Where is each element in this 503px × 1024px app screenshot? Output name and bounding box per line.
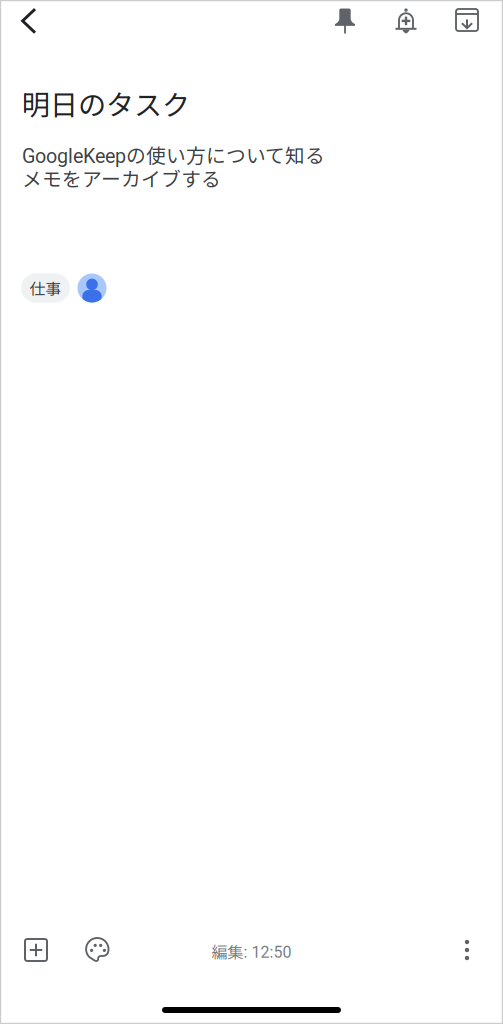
button[interactable]: 仕事 — [21, 273, 70, 302]
button[interactable]: Collaborator — [77, 273, 106, 302]
button[interactable]: Back — [5, 0, 51, 43]
button[interactable]: More options — [444, 927, 490, 973]
button[interactable]: Add to note — [13, 927, 59, 973]
button[interactable]: Add reminder — [383, 0, 429, 41]
button[interactable]: Change colour — [74, 927, 120, 973]
button[interactable]: Pin note — [322, 0, 368, 43]
button[interactable]: Archive — [444, 0, 490, 42]
staticText: 編集: 12:50 — [211, 940, 291, 963]
staticText: 仕事 — [29, 277, 61, 299]
staticText: 明日のタスク — [22, 83, 190, 123]
staticText: GoogleKeepの使い方について知る メモをアーカイブする — [22, 140, 325, 192]
